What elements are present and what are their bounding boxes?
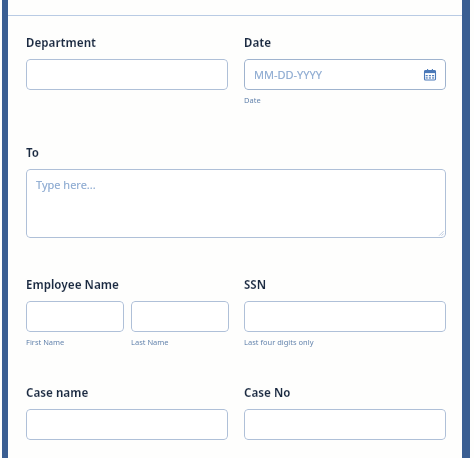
staticText: To (26, 145, 236, 161)
button[interactable]: Date, MM-DD-YYYY (244, 59, 446, 90)
staticText: Date (244, 35, 454, 51)
staticText: Employee Name (26, 277, 236, 293)
button[interactable]: Case name (26, 409, 228, 440)
staticText: Last Name (131, 337, 169, 347)
staticText: SSN (244, 277, 454, 293)
button[interactable]: Department (26, 59, 228, 90)
button[interactable]: SSN (244, 301, 446, 332)
staticText: Date (244, 95, 261, 105)
button[interactable]: First Name (26, 301, 124, 332)
button[interactable]: Case No (244, 409, 446, 440)
button[interactable]: To (26, 169, 446, 238)
staticText: Case name (26, 385, 236, 401)
staticText: Last four digits only (244, 337, 314, 347)
staticText: First Name (26, 337, 65, 347)
staticText: Case No (244, 385, 454, 401)
staticText: Type here... (36, 177, 96, 192)
button[interactable]: Last Name (131, 301, 229, 332)
staticText: Department (26, 35, 236, 51)
staticText: MM-DD-YYYY (254, 67, 323, 82)
